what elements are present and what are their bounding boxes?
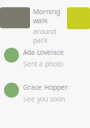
- staticText: Sent a photo: [23, 59, 63, 68]
- staticText: Grace Hopper: [23, 83, 68, 91]
- button[interactable]: Grace Hopper: [0, 85, 90, 101]
- button[interactable]: Ada Lovelace: [0, 50, 90, 66]
- staticText: around park: [33, 27, 56, 45]
- button[interactable]: Morning walk: [0, 15, 90, 37]
- staticText: See you soon: [23, 94, 65, 103]
- staticText: Ada Lovelace: [23, 48, 64, 56]
- staticText: Morning walk: [33, 7, 60, 25]
